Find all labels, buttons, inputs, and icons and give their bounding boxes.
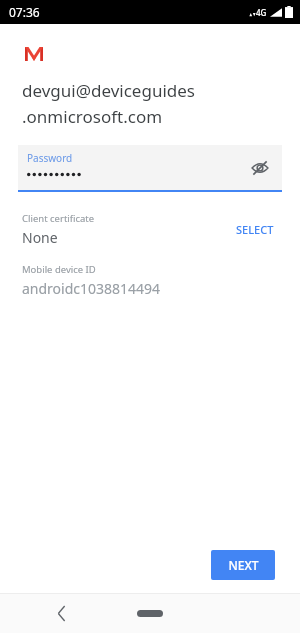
staticText: Mobile device ID [22, 263, 96, 276]
staticText: NEXT [228, 557, 259, 573]
button[interactable]: NEXT [211, 550, 275, 580]
staticText: devgui@deviceguides [22, 79, 195, 102]
staticText: androidc1038814494 [22, 279, 161, 298]
button[interactable]: Mobile device ID [22, 263, 278, 298]
staticText: Client certificate [22, 212, 95, 225]
button[interactable]: SELECT [232, 216, 278, 243]
button[interactable]: Show password [246, 154, 274, 182]
staticText: None [22, 228, 58, 247]
staticText: 07:36 [9, 4, 40, 20]
button[interactable]: Home [133, 607, 167, 619]
staticText: .onmicrosoft.com [22, 105, 163, 128]
button[interactable]: Password [18, 145, 282, 192]
staticText: 4G [256, 7, 267, 18]
button[interactable]: Back [46, 598, 76, 628]
staticText: Password [27, 151, 73, 165]
staticText: SELECT [236, 222, 274, 237]
